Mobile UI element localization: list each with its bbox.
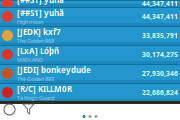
staticText: High moon — [17, 18, 43, 25]
staticText: 44,347,411 — [142, 0, 178, 8]
staticText: [##S1] yuhã — [17, 8, 64, 18]
staticText: High moon — [17, 5, 43, 12]
staticText: [JEDK] kxf7 — [17, 27, 61, 37]
staticText: 27,930,346 — [142, 69, 178, 78]
staticText: [JEDI] bonkeydude — [17, 65, 91, 75]
staticText: Ta King's Guard — [17, 94, 54, 101]
staticText: 33,835,791 — [142, 31, 178, 40]
button[interactable]: [##S1] yuhã — [0, 7, 180, 26]
button[interactable]: [R/C] KILLM0R — [0, 83, 180, 102]
button[interactable]: [JEDK] kxf7 — [0, 26, 180, 45]
staticText: 22,686,824 — [142, 88, 178, 97]
button[interactable]: Filter — [19, 104, 38, 115]
staticText: The Golden 888 — [17, 75, 54, 82]
button[interactable]: Search — [0, 104, 19, 115]
staticText: [##S1] yuhã — [17, 0, 64, 5]
staticText: [LxA] Lóþñ — [17, 46, 59, 56]
staticText: [R/C] KILLM0R — [17, 84, 72, 94]
button[interactable]: [JEDI] bonkeydude — [0, 64, 180, 83]
staticText: MADLAND — [17, 56, 43, 63]
staticText: 30,174,275 — [142, 50, 178, 59]
button[interactable]: [LxA] Lóþñ — [0, 45, 180, 64]
button[interactable]: [##S1] yuhã — [0, 0, 180, 12]
staticText: 44,347,411 — [142, 12, 178, 21]
staticText: The Golden 888 — [17, 37, 54, 44]
